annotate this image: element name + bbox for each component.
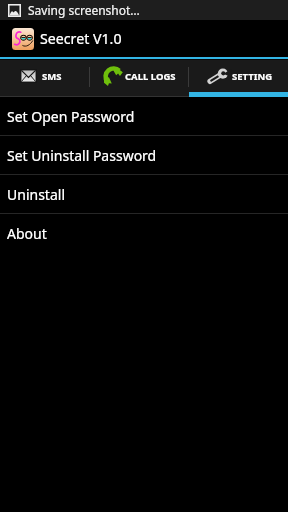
button[interactable]: SMS [0, 60, 90, 97]
button[interactable]: Set Open Password [0, 97, 288, 135]
button[interactable]: Set Uninstall Password [0, 136, 288, 174]
button[interactable]: About [0, 214, 288, 252]
staticText: SETTING [232, 70, 273, 83]
button[interactable]: Setting [189, 60, 288, 97]
other: SMS [20, 69, 37, 83]
staticText: CALL LOGS [125, 70, 176, 83]
other: Setting [207, 69, 229, 84]
staticText: SMS [42, 70, 62, 83]
other: Call logs [104, 66, 123, 86]
staticText: Saving screenshot… [28, 2, 140, 18]
staticText: Uninstall [7, 185, 65, 204]
button[interactable]: Uninstall [0, 175, 288, 213]
staticText: Set Uninstall Password [7, 146, 157, 165]
staticText: Seecret V1.0 [40, 29, 122, 48]
button[interactable]: Call logs [90, 60, 189, 97]
staticText: About [7, 224, 47, 243]
staticText: Set Open Password [7, 107, 135, 126]
